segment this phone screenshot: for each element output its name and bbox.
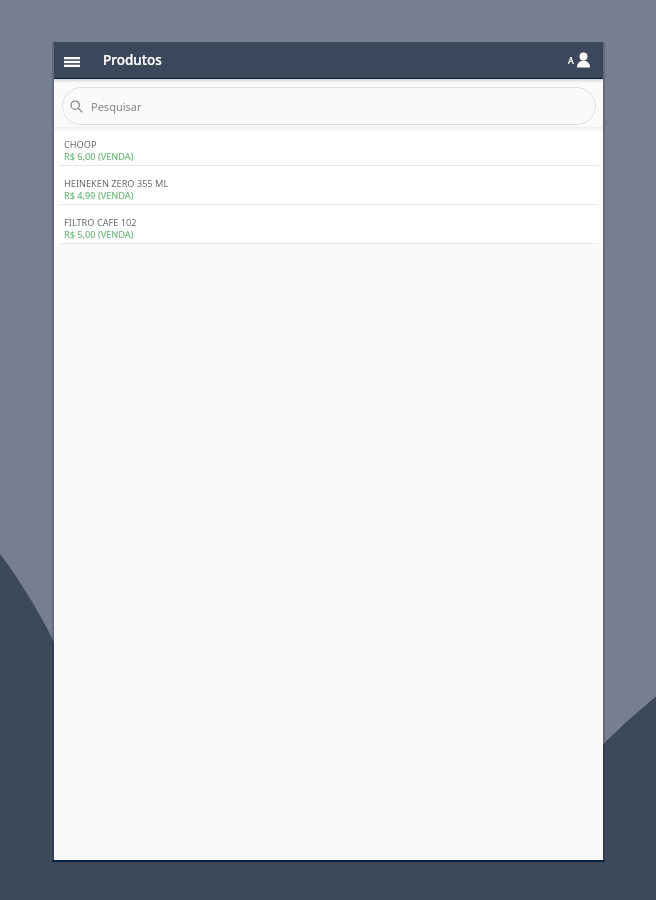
button[interactable]: FILTRO CAFE 102 [54, 205, 603, 244]
staticText: R$ 6,00 (VENDA) [64, 150, 134, 163]
staticText: Pesquisar [91, 99, 142, 114]
staticText: Produtos [103, 51, 162, 69]
staticText: CHOOP [64, 138, 97, 151]
button[interactable]: Pesquisar [62, 87, 596, 125]
button[interactable]: HEINEKEN ZERO 355 ML [54, 166, 603, 205]
button[interactable]: CHOOP [54, 127, 603, 166]
button[interactable]: Open navigation menu [58, 42, 85, 78]
button[interactable]: Account [568, 51, 591, 69]
staticText: A [568, 54, 574, 66]
staticText: R$ 4,99 (VENDA) [64, 189, 134, 202]
staticText: HEINEKEN ZERO 355 ML [64, 177, 169, 190]
staticText: FILTRO CAFE 102 [64, 216, 137, 229]
staticText: R$ 5,00 (VENDA) [64, 228, 134, 241]
